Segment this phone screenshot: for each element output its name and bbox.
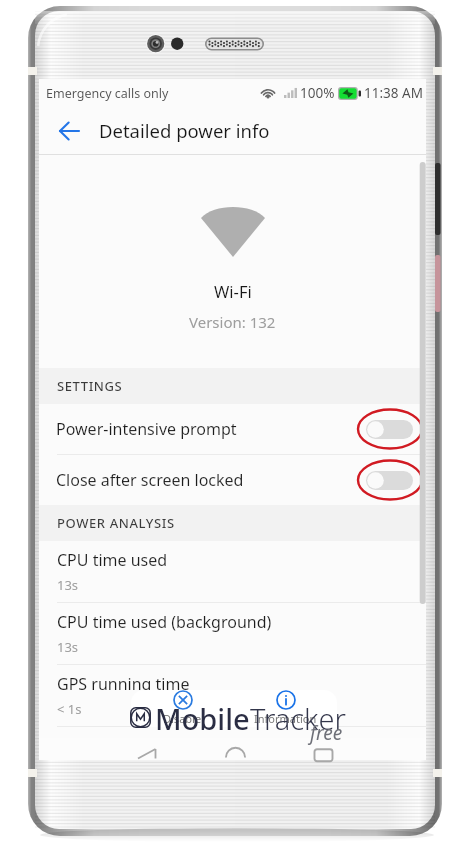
staticText: < 1s	[57, 700, 82, 718]
button[interactable]: Recent apps	[280, 738, 367, 760]
button[interactable]: CPU time used (background)	[39, 603, 426, 664]
button[interactable]: Back	[103, 738, 191, 760]
staticText: Version: 132	[189, 312, 276, 332]
button[interactable]: GPS running time	[39, 665, 426, 726]
staticText: GPS running time	[57, 673, 190, 695]
staticText: Tracker	[250, 699, 346, 738]
staticText: Detailed power info	[99, 118, 270, 143]
staticText: 13s	[57, 638, 79, 656]
staticText: Mobile	[155, 699, 250, 738]
staticText: CPU time used	[57, 549, 168, 571]
staticText: free	[310, 720, 343, 746]
staticText: Disable	[163, 711, 202, 726]
staticText: Wi-Fi	[214, 280, 252, 302]
button[interactable]: Power-intensive prompt	[39, 404, 426, 454]
staticText: 13s	[57, 576, 79, 594]
staticText: Close after screen locked	[56, 469, 244, 491]
button[interactable]: Disable	[131, 690, 234, 727]
staticText: CPU time used (background)	[57, 611, 272, 633]
staticText: POWER ANALYSIS	[57, 514, 175, 532]
staticText: 100%	[300, 84, 335, 102]
button[interactable]: Home	[191, 738, 280, 760]
staticText: 11:38 AM	[364, 84, 423, 102]
staticText: Information	[254, 711, 317, 726]
button[interactable]: Back	[39, 107, 99, 154]
button[interactable]: Information	[234, 690, 337, 727]
button[interactable]: Close after screen locked	[39, 455, 426, 505]
staticText: Power-intensive prompt	[56, 418, 237, 440]
button[interactable]: CPU time used	[39, 541, 426, 602]
staticText: SETTINGS	[57, 377, 123, 395]
staticText: Emergency calls only	[46, 85, 169, 102]
